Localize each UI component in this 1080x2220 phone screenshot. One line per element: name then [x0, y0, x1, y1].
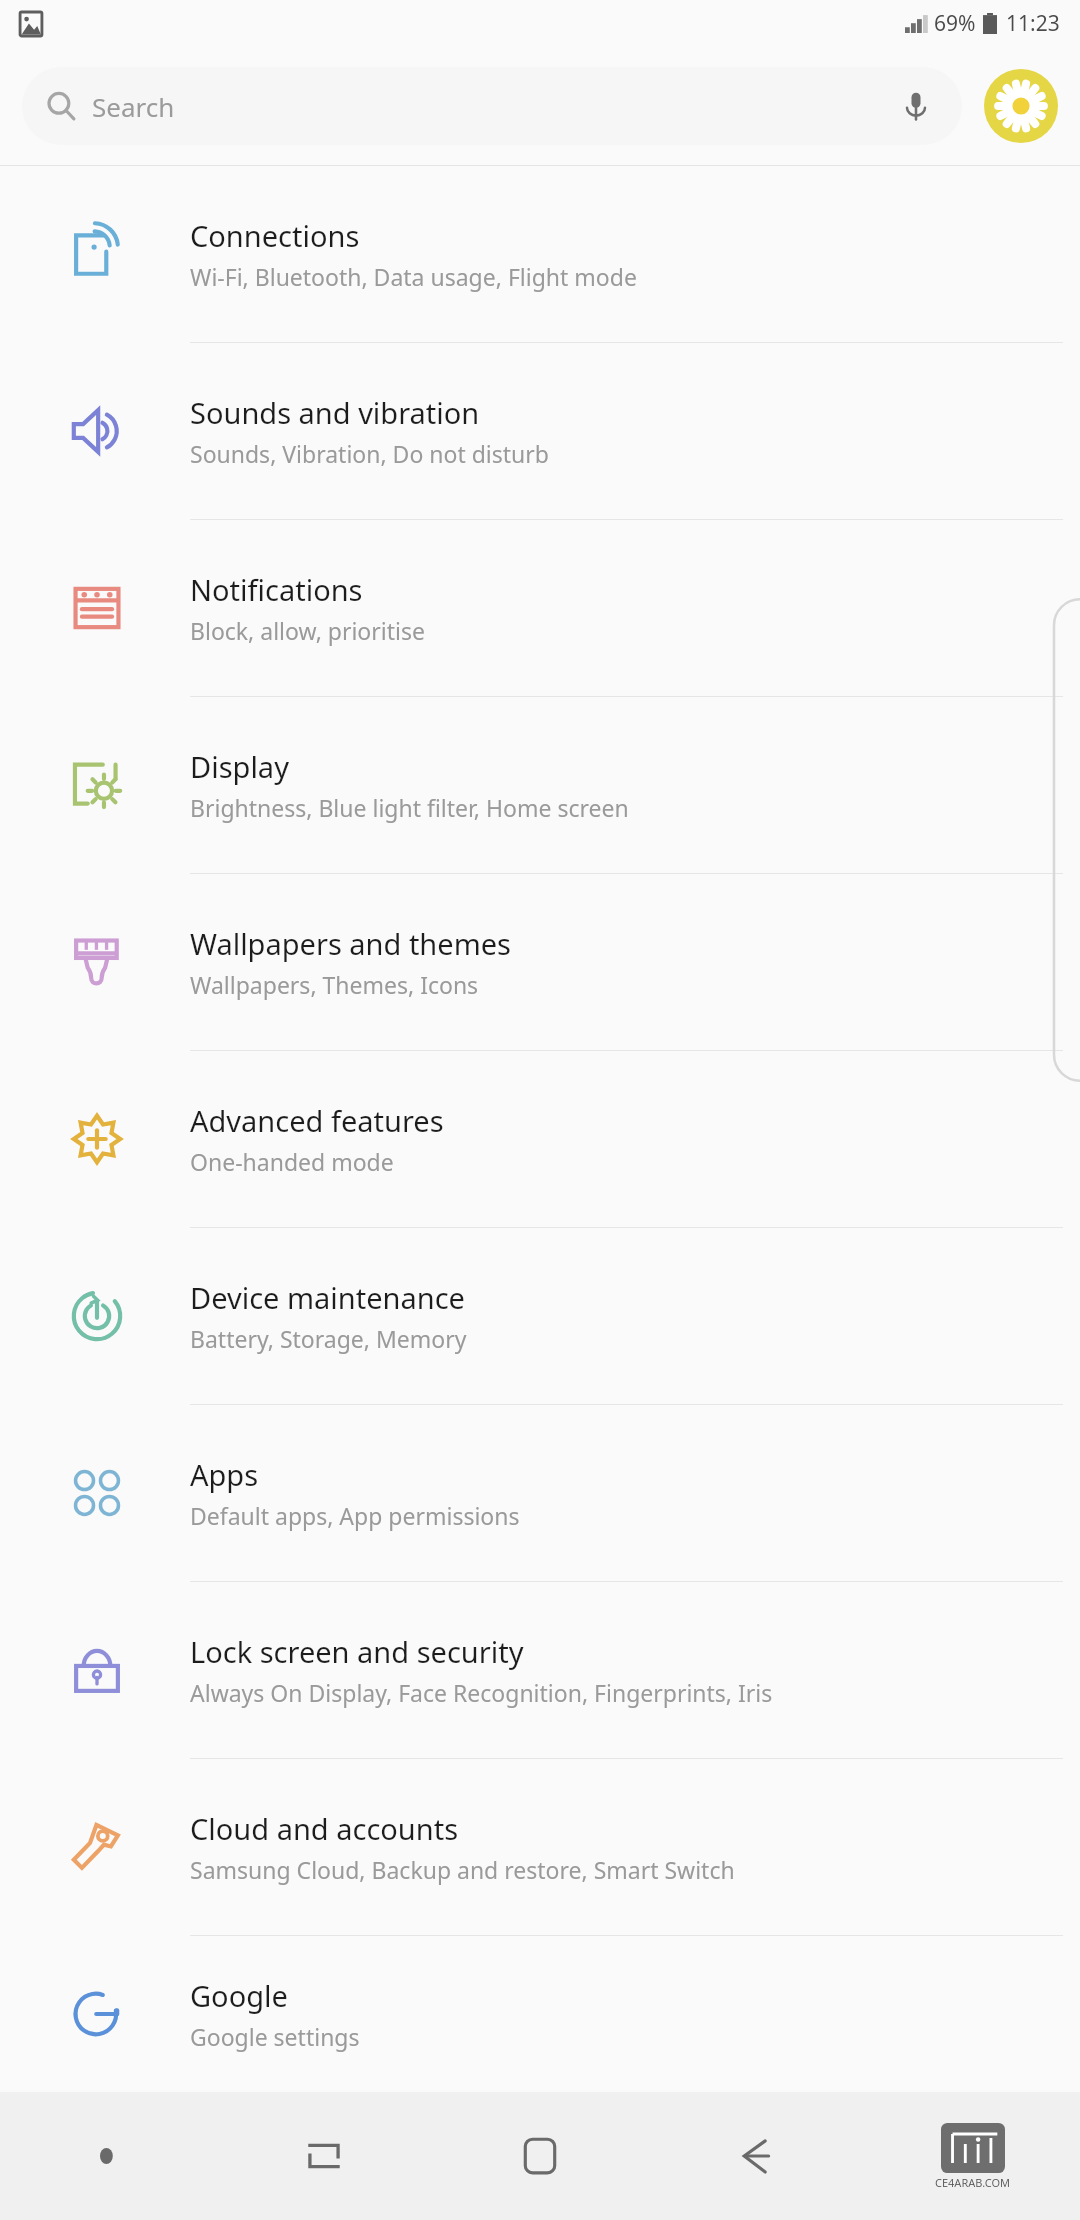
button[interactable]: Voice search: [894, 84, 938, 128]
staticText: Always On Display, Face Recognition, Fin…: [190, 1677, 773, 1708]
staticText: Device maintenance: [190, 1278, 465, 1317]
staticText: Block, allow, prioritise: [190, 615, 425, 646]
staticText: Wallpapers, Themes, Icons: [190, 969, 479, 1000]
button[interactable]: Device maintenance: [0, 1228, 1080, 1404]
staticText: Brightness, Blue light filter, Home scre…: [190, 792, 629, 823]
staticText: 69%: [934, 9, 976, 38]
staticText: Sounds, Vibration, Do not disturb: [190, 438, 549, 469]
button[interactable]: Account: [984, 69, 1058, 143]
button[interactable]: Notifications: [0, 520, 1080, 696]
button[interactable]: Search: [22, 67, 962, 145]
button[interactable]: Advanced features: [0, 1051, 1080, 1227]
staticText: Cloud and accounts: [190, 1809, 459, 1848]
staticText: Wallpapers and themes: [190, 924, 512, 963]
button[interactable]: Google: [0, 1936, 1080, 2092]
staticText: One-handed mode: [190, 1146, 394, 1177]
button[interactable]: Apps: [0, 1405, 1080, 1581]
button[interactable]: Cloud and accounts: [0, 1759, 1080, 1935]
staticText: Samsung Cloud, Backup and restore, Smart…: [190, 1854, 735, 1885]
staticText: Connections: [190, 216, 360, 255]
button[interactable]: Lock screen and security: [0, 1582, 1080, 1758]
staticText: 11:23: [1006, 9, 1060, 38]
staticText: Default apps, App permissions: [190, 1500, 520, 1531]
button[interactable]: Wallpapers and themes: [0, 874, 1080, 1050]
button[interactable]: Recents: [216, 2092, 432, 2220]
staticText: Google: [190, 1976, 288, 2015]
staticText: Apps: [190, 1455, 259, 1494]
button[interactable]: Connections: [0, 166, 1080, 342]
staticText: Display: [190, 747, 289, 786]
button[interactable]: Menu indicator: [0, 2092, 216, 2220]
staticText: Notifications: [190, 570, 363, 609]
staticText: Sounds and vibration: [190, 393, 480, 432]
staticText: Wi-Fi, Bluetooth, Data usage, Flight mod…: [190, 261, 637, 292]
staticText: Search: [92, 89, 175, 124]
staticText: Battery, Storage, Memory: [190, 1323, 467, 1354]
button[interactable]: Display: [0, 697, 1080, 873]
staticText: CE4ARAB.COM: [935, 2175, 1010, 2190]
button[interactable]: Back: [648, 2092, 864, 2220]
staticText: Advanced features: [190, 1101, 444, 1140]
button[interactable]: Home: [432, 2092, 648, 2220]
staticText: Google settings: [190, 2021, 360, 2052]
staticText: Lock screen and security: [190, 1632, 524, 1671]
button[interactable]: Sounds and vibration: [0, 343, 1080, 519]
